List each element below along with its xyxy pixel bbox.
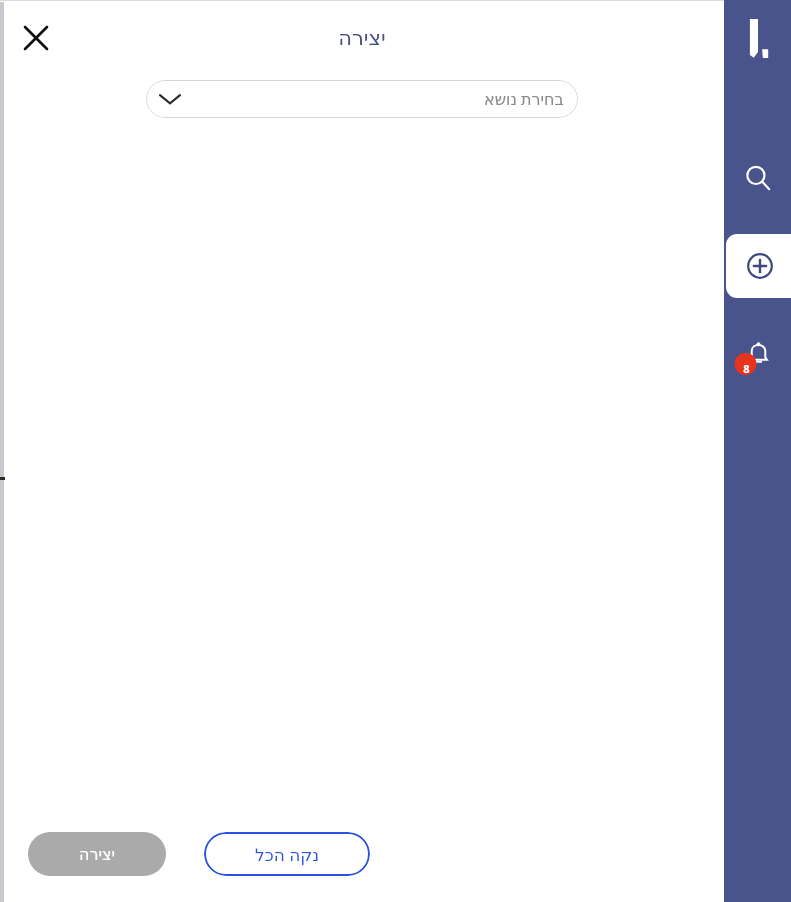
staticText: 8 bbox=[743, 361, 750, 376]
staticText: יצירה bbox=[79, 845, 116, 864]
button[interactable]: בחירת נושא bbox=[146, 80, 578, 118]
button[interactable]: יצירה bbox=[28, 832, 166, 876]
staticText: בחירת נושא bbox=[484, 88, 564, 110]
button[interactable]: Search bbox=[724, 152, 791, 204]
button[interactable]: נקה הכל bbox=[204, 832, 370, 876]
button[interactable]: Notifications, 8 new bbox=[724, 327, 791, 379]
staticText: נקה הכל bbox=[255, 843, 320, 866]
staticText: יצירה bbox=[338, 26, 386, 50]
button[interactable]: Close bbox=[14, 16, 58, 60]
button[interactable]: Create bbox=[726, 234, 791, 298]
button[interactable]: Home bbox=[724, 14, 791, 66]
